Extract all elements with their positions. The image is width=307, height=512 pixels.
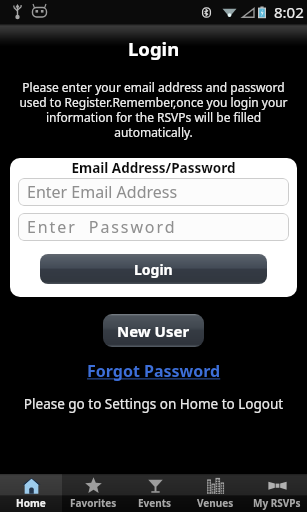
staticText: My RSVPs	[253, 496, 301, 510]
button[interactable]: Login	[40, 254, 267, 284]
button[interactable]: Enter Email Address	[18, 178, 289, 206]
staticText: 8:02	[274, 2, 304, 22]
staticText: Please go to Settings on Home to Logout	[0, 395, 307, 413]
button[interactable]: Forgot Password	[87, 360, 221, 382]
staticText: Favorites	[70, 496, 117, 510]
staticText: Please enter your email address and pass…	[12, 79, 295, 140]
button[interactable]: Enter Password	[18, 213, 289, 241]
staticText: Events	[138, 496, 172, 510]
staticText: Forgot Password	[87, 360, 221, 382]
staticText: Enter Email Address	[27, 181, 178, 203]
staticText: Enter Password	[27, 216, 177, 238]
button[interactable]: My RSVPs	[246, 474, 307, 512]
staticText: Login	[128, 36, 180, 61]
staticText: New User	[117, 321, 190, 341]
button[interactable]: New User	[103, 314, 204, 347]
button[interactable]: Venues	[185, 474, 246, 512]
button[interactable]: Events	[124, 474, 185, 512]
staticText: Venues	[197, 496, 234, 510]
staticText: Login	[134, 260, 173, 279]
staticText: Email Address/Password	[18, 159, 289, 177]
button[interactable]: Home	[0, 474, 62, 512]
staticText: Home	[16, 496, 46, 510]
button[interactable]: Favorites	[62, 474, 124, 512]
